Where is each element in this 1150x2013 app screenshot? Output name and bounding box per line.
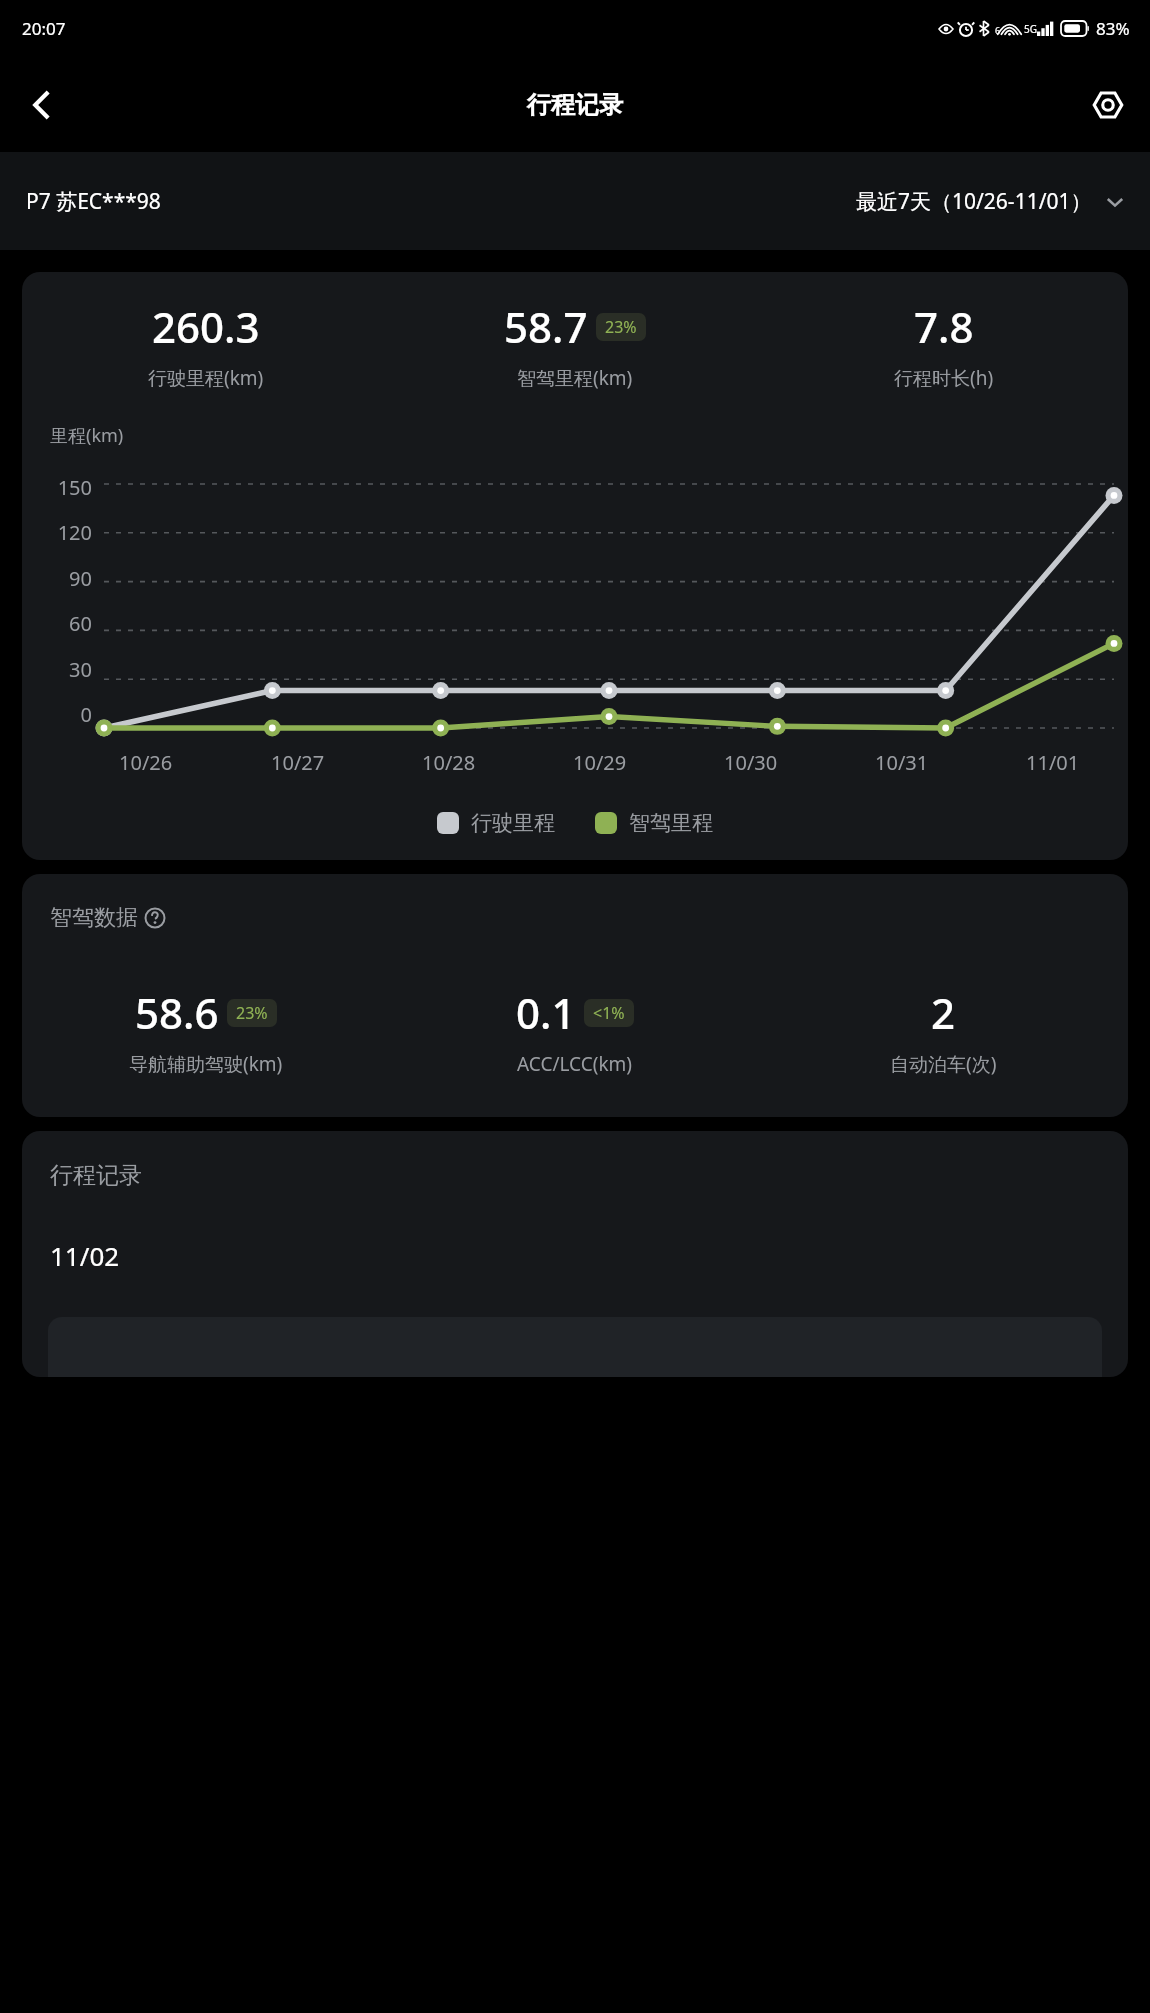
button[interactable]: 260.3	[22, 272, 1128, 860]
staticText: 58.6	[135, 984, 219, 1041]
staticText: 23%	[605, 316, 637, 338]
other: Info	[144, 907, 166, 929]
staticText: 行驶里程(km)	[148, 365, 264, 391]
staticText: ACC/LCC(km)	[517, 1051, 632, 1077]
button[interactable]: 行驶里程	[437, 810, 555, 836]
button[interactable]: Settings	[1080, 77, 1136, 133]
staticText: 120	[57, 519, 92, 546]
staticText: 30	[69, 656, 92, 683]
staticText: 最近7天（10/26-11/01）	[856, 187, 1092, 216]
staticText: <1%	[593, 1002, 625, 1024]
staticText: 2	[931, 984, 956, 1041]
button[interactable]: 智驾数据	[50, 904, 166, 932]
staticText: 20:07	[22, 17, 66, 40]
staticText: 行程时长(h)	[894, 365, 994, 391]
staticText: 150	[57, 474, 92, 501]
staticText: 10/29	[573, 749, 627, 776]
staticText: 6	[995, 24, 1001, 36]
staticText: 10/27	[271, 749, 325, 776]
staticText: 58.7	[504, 298, 588, 355]
staticText: 260.3	[152, 298, 260, 355]
staticText: 里程(km)	[50, 423, 124, 448]
staticText: 11/02	[50, 1238, 120, 1273]
button[interactable]: 智驾里程	[595, 810, 713, 836]
staticText: 23%	[236, 1002, 268, 1024]
button[interactable]: Back	[14, 77, 70, 133]
staticText: 自动泊车(次)	[890, 1051, 997, 1077]
staticText: P7 苏EC***98	[26, 187, 161, 216]
staticText: 行程记录	[50, 1161, 142, 1190]
staticText: 行驶里程	[471, 810, 555, 836]
staticText: 智驾里程	[629, 810, 713, 836]
button[interactable]: P7 苏EC***98	[26, 179, 161, 224]
staticText: 10/28	[422, 749, 476, 776]
staticText: 行程记录	[527, 90, 623, 120]
staticText: 60	[69, 610, 92, 637]
staticText: 智驾里程(km)	[517, 365, 633, 391]
staticText: 智驾数据	[50, 904, 138, 932]
button[interactable]: 智驾数据	[22, 874, 1128, 1117]
staticText: 90	[69, 565, 92, 592]
staticText: 10/31	[875, 749, 929, 776]
staticText: 10/26	[119, 749, 173, 776]
staticText: 11/01	[1026, 749, 1080, 776]
button[interactable]: 最近7天（10/26-11/01）	[856, 179, 1124, 224]
staticText: 83%	[1096, 17, 1130, 40]
staticText: 0	[80, 701, 92, 728]
button[interactable]: 行程记录	[22, 1131, 1128, 1377]
staticText: 5G	[1024, 22, 1037, 36]
staticText: 0.1	[516, 984, 576, 1041]
staticText: 10/30	[724, 749, 778, 776]
staticText: 导航辅助驾驶(km)	[129, 1051, 283, 1077]
staticText: 7.8	[914, 298, 974, 355]
